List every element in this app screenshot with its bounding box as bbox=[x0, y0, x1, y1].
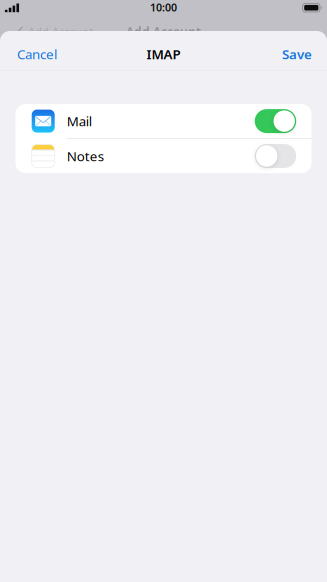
button[interactable]: Cancel bbox=[11, 39, 63, 69]
button[interactable]: Notes bbox=[15, 139, 311, 173]
staticText: Mail bbox=[67, 112, 92, 130]
staticText: IMAP bbox=[146, 45, 180, 63]
button[interactable]: Mail bbox=[15, 104, 311, 138]
staticText: Notes bbox=[67, 147, 104, 165]
staticText: Save bbox=[282, 45, 312, 63]
staticText: Add Account bbox=[126, 23, 201, 39]
staticText: Cancel bbox=[17, 45, 57, 63]
button[interactable]: Save bbox=[276, 39, 318, 69]
staticText: Add Account bbox=[28, 24, 93, 39]
staticText: 10:00 bbox=[150, 0, 177, 14]
